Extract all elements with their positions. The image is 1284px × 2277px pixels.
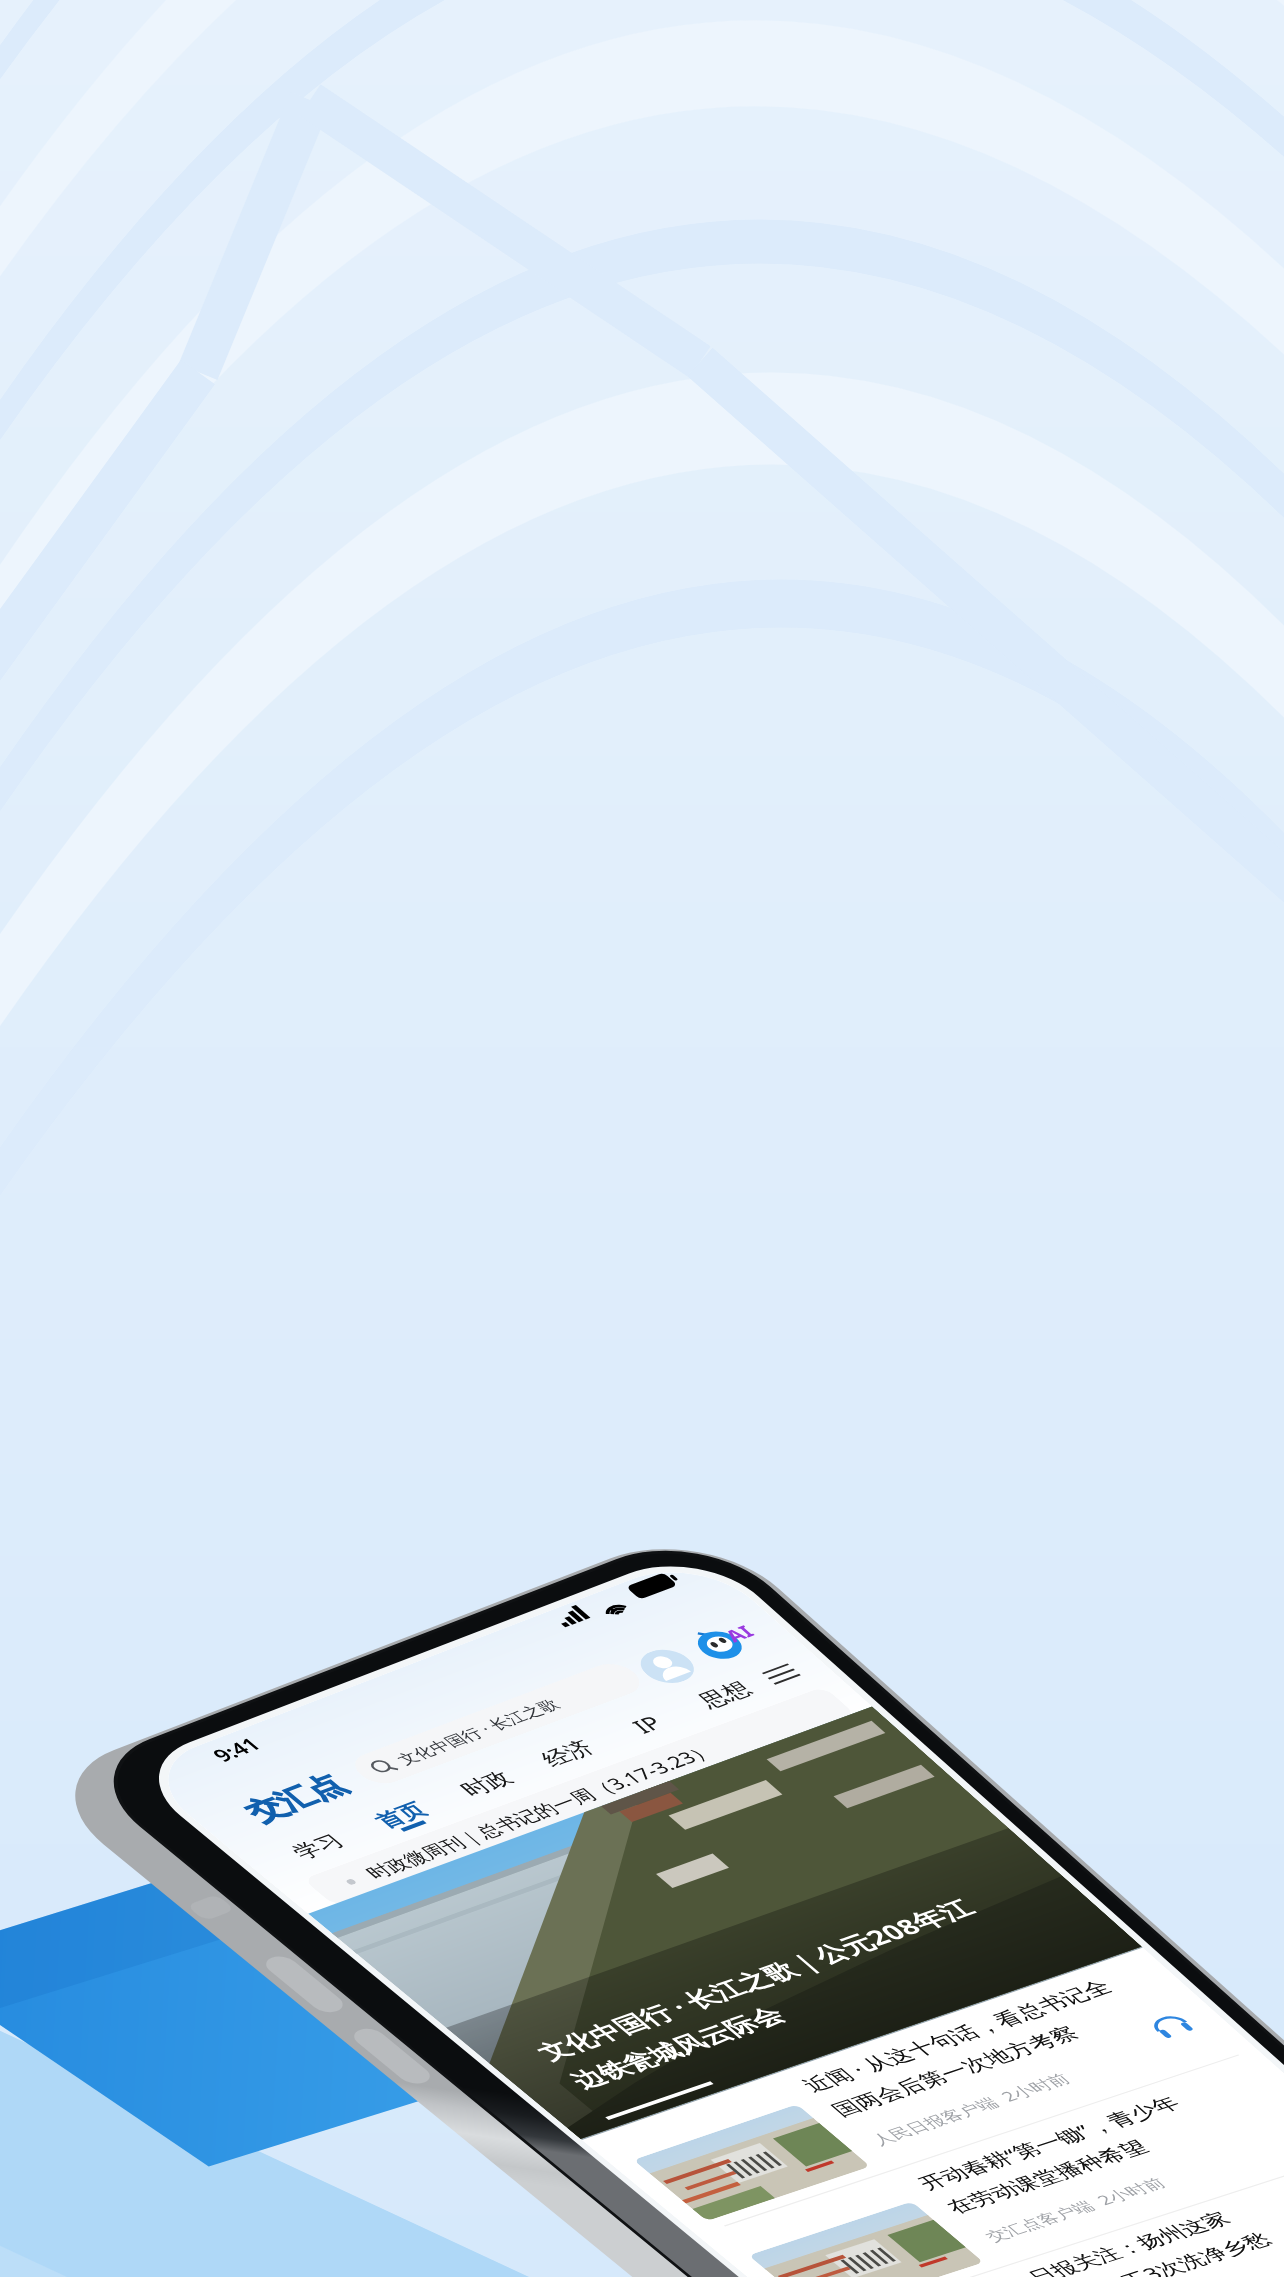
staticText: 时政微周刊｜总书记的一周（3.17-3.23） (154, 165, 392, 183)
button[interactable]: 首页 (178, 129, 230, 153)
button[interactable]: 文化中国行 · 长江之歌｜公元208年江 边铁瓮城风云际会 (100, 186, 490, 424)
staticText: 经济 (305, 132, 335, 151)
button[interactable]: 时政微周刊｜总书记的一周（3.17-3.23） (118, 160, 478, 188)
staticText: AI (459, 94, 474, 112)
button[interactable]: AI assistant (438, 90, 474, 120)
button[interactable]: 开动春耕“第一锄”，青少年 在劳动课堂播种希望 (100, 537, 490, 634)
button[interactable]: 时政 (238, 129, 290, 153)
staticText: 扬州日报 2小时前 (248, 704, 346, 720)
button[interactable]: 近闻 · 从这十句话，看总书记全 国两会后第一次地方考察 (100, 432, 490, 529)
button[interactable]: 经济 (294, 129, 346, 153)
staticText: 日报关注：扬州这家 企业返工3次洗净乡愁 (246, 643, 390, 689)
staticText: 时政 (249, 132, 279, 151)
staticText: 文化中国行 · 长江之歌 (235, 95, 343, 110)
button[interactable]: 文化中国行 · 长江之歌 (208, 89, 396, 116)
button[interactable]: 日报关注：扬州这家 企业返工3次洗净乡愁 (100, 642, 490, 739)
staticText: 文化中国行 · 长江之歌｜公元208年江 边铁瓮城风云际会 (132, 338, 429, 393)
button[interactable]: 思想 (401, 129, 453, 153)
staticText: 近闻 · 从这十句话，看总书记全 国两会后第一次地方考察 (246, 433, 453, 480)
staticText: 思想 (412, 132, 442, 151)
staticText: 首页 (189, 132, 219, 151)
staticText: 交汇点客户端 2小时前 (248, 599, 370, 615)
staticText: 开动春耕“第一锄”，青少年 在劳动课堂播种希望 (246, 538, 422, 585)
